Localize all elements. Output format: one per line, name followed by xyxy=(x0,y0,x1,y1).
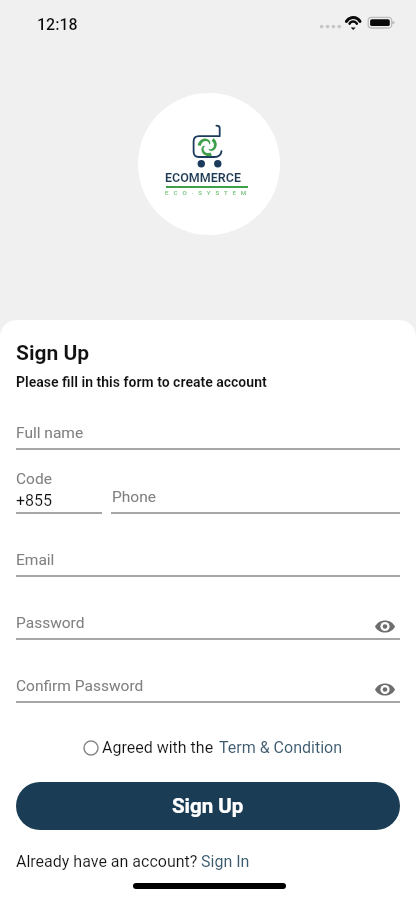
staticText: Already have an account? xyxy=(16,852,198,871)
button[interactable]: Sign Up xyxy=(16,782,400,830)
staticText: Agreed with the xyxy=(102,738,214,757)
staticText: ECOMMERCE xyxy=(165,170,241,185)
staticText: Confirm Password xyxy=(16,677,144,695)
button[interactable]: Show password xyxy=(373,678,397,700)
staticText: +855 xyxy=(16,491,53,510)
staticText: Full name xyxy=(16,424,84,442)
staticText: Sign In xyxy=(201,852,250,871)
staticText: Sign Up xyxy=(172,794,244,818)
staticText: Sign Up xyxy=(16,341,90,366)
staticText: Code xyxy=(16,470,52,488)
button[interactable]: Agree to terms xyxy=(83,740,99,756)
button[interactable]: Sign In xyxy=(201,852,250,871)
button[interactable]: Term & Condition xyxy=(219,738,342,757)
button[interactable]: Show password xyxy=(373,615,397,637)
staticText: 12:18 xyxy=(37,15,78,34)
staticText: Please fill in this form to create accou… xyxy=(16,374,267,390)
staticText: E C O · S Y S T E M xyxy=(165,189,248,196)
staticText: Password xyxy=(16,614,85,632)
staticText: Term & Condition xyxy=(219,738,342,757)
staticText: Phone xyxy=(112,488,156,506)
staticText: Email xyxy=(16,551,55,569)
